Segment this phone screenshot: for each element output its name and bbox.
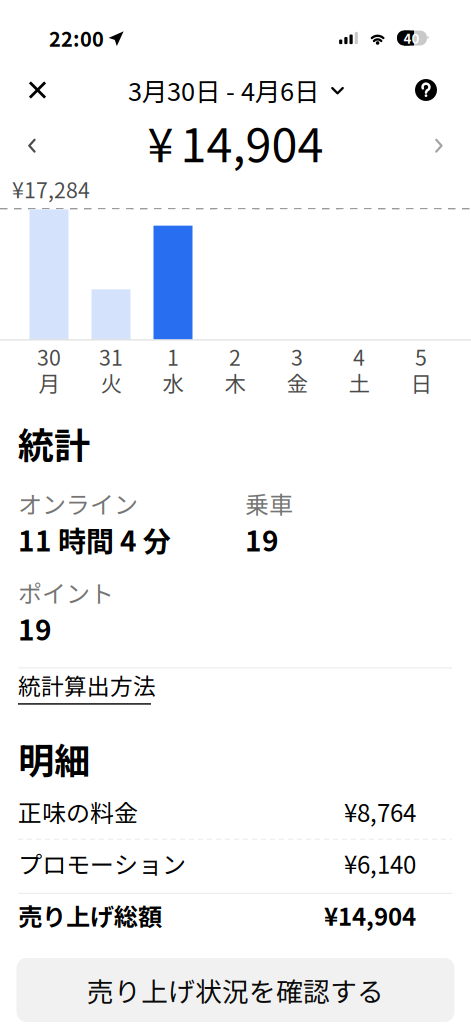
staticText: 3月30日 - 4月6日: [128, 72, 319, 108]
staticText: 31: [99, 341, 123, 372]
button[interactable]: 次の週: [411, 116, 467, 176]
staticText: 11 時間 4 分: [18, 519, 171, 560]
staticText: 14,904: [180, 108, 323, 176]
staticText: 日: [410, 367, 431, 398]
button[interactable]: 閉じる: [9, 64, 65, 116]
staticText: 3: [291, 341, 303, 372]
staticText: 19: [245, 519, 279, 560]
staticText: 22:00: [49, 23, 104, 52]
staticText: 明細: [18, 733, 90, 785]
staticText: 月: [38, 367, 59, 398]
staticText: 統計: [18, 417, 90, 469]
staticText: 40: [403, 28, 419, 48]
button[interactable]: 売り上げ状況を確認する: [16, 958, 454, 1022]
button[interactable]: 3月30日 - 4月6日: [106, 64, 366, 116]
staticText: 火: [100, 367, 121, 398]
staticText: オンライン: [18, 486, 138, 521]
staticText: ¥8,764: [344, 794, 416, 829]
staticText: ポイント: [18, 575, 114, 610]
staticText: 1: [167, 341, 179, 372]
staticText: 売り上げ状況を確認する: [87, 971, 384, 1009]
staticText: ¥6,140: [344, 846, 416, 881]
staticText: プロモーション: [18, 846, 186, 881]
staticText: 木: [224, 367, 245, 398]
staticText: 乗車: [245, 486, 293, 521]
staticText: 2: [229, 341, 241, 372]
button[interactable]: 統計算出方法: [0, 668, 471, 705]
button[interactable]: ヘルプ: [402, 64, 450, 116]
staticText: 土: [348, 367, 369, 398]
staticText: ¥: [147, 108, 173, 176]
staticText: 5: [415, 341, 427, 372]
staticText: ¥14,904: [324, 898, 416, 933]
staticText: 金: [286, 367, 307, 398]
staticText: 水: [162, 367, 183, 398]
staticText: 30: [37, 341, 61, 372]
button[interactable]: 前の週: [4, 116, 60, 176]
staticText: 売り上げ総額: [18, 898, 162, 933]
staticText: 4: [353, 341, 365, 372]
staticText: 正味の料金: [18, 794, 138, 829]
staticText: ¥17,284: [12, 174, 90, 204]
staticText: 統計算出方法: [18, 668, 156, 701]
staticText: 19: [18, 608, 52, 649]
